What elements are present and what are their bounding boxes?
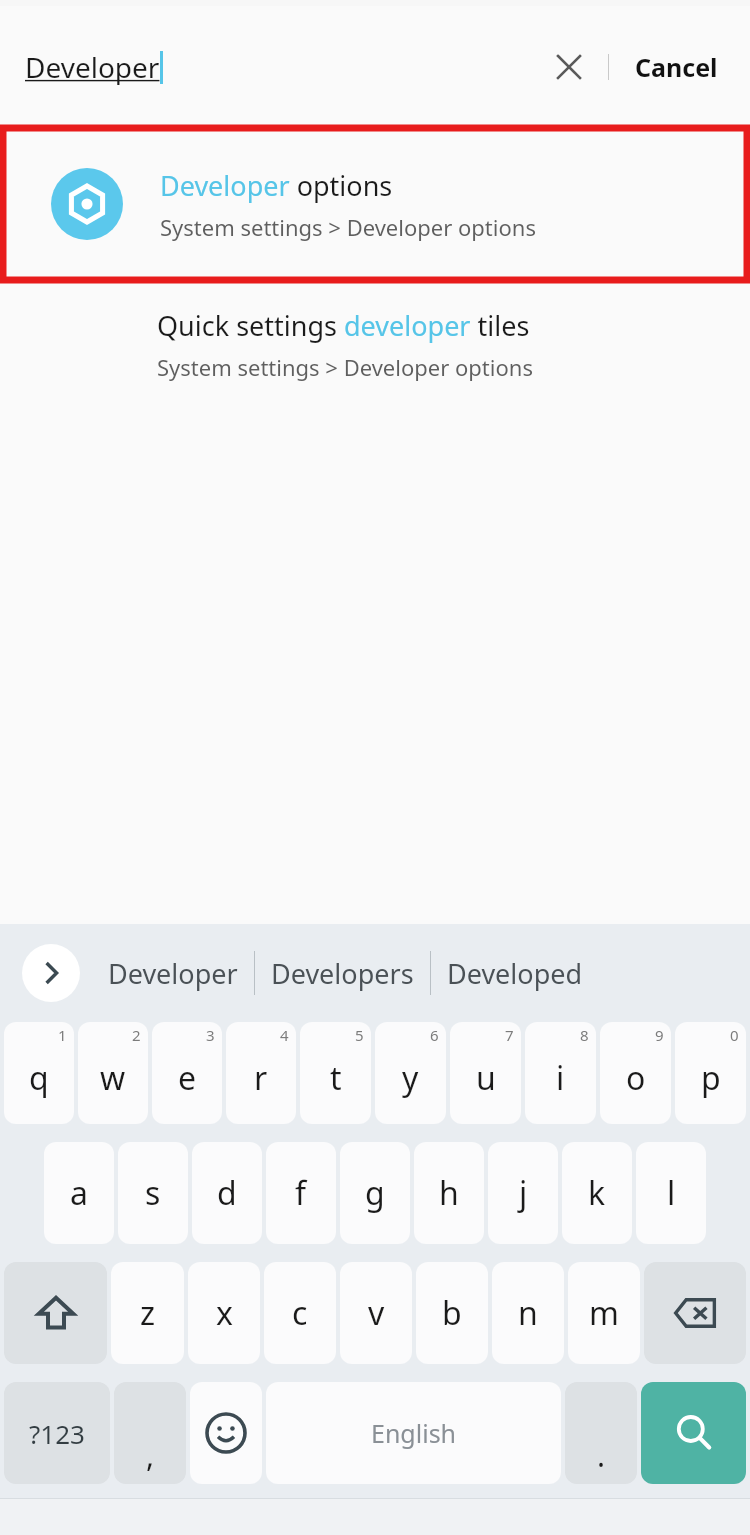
button[interactable]: 5 <box>300 1022 371 1124</box>
staticText: r <box>254 1056 268 1100</box>
staticText: s <box>145 1171 161 1215</box>
button[interactable]: k <box>562 1142 632 1244</box>
staticText: 8 <box>580 1025 589 1045</box>
button[interactable]: c <box>264 1262 336 1364</box>
staticText: ?123 <box>29 1416 85 1451</box>
button[interactable]: More suggestions <box>22 944 80 1002</box>
button[interactable]: Comma <box>114 1382 186 1484</box>
button[interactable]: ?123 <box>4 1382 110 1484</box>
button[interactable]: 3 <box>152 1022 222 1124</box>
staticText: y <box>402 1056 419 1100</box>
staticText: u <box>476 1056 496 1100</box>
button[interactable]: x <box>188 1262 260 1364</box>
staticText: h <box>439 1171 459 1215</box>
button[interactable]: 4 <box>226 1022 296 1124</box>
button[interactable]: 6 <box>375 1022 446 1124</box>
button[interactable]: Clear search <box>540 38 598 96</box>
staticText: m <box>589 1291 619 1335</box>
button[interactable]: Quick settings developer tiles <box>0 280 750 408</box>
button[interactable]: Developed <box>431 943 599 1004</box>
button[interactable]: g <box>340 1142 410 1244</box>
staticText: 7 <box>505 1025 514 1045</box>
button[interactable]: Backspace <box>644 1262 746 1364</box>
button[interactable]: d <box>192 1142 262 1244</box>
staticText: System settings > Developer options <box>160 212 536 242</box>
staticText: o <box>626 1056 646 1100</box>
staticText: 2 <box>132 1025 141 1045</box>
button[interactable]: v <box>340 1262 412 1364</box>
button[interactable]: Search <box>641 1382 746 1484</box>
staticText: Developer <box>108 955 238 992</box>
staticText: n <box>518 1291 538 1335</box>
staticText: b <box>442 1291 462 1335</box>
staticText: w <box>100 1056 126 1100</box>
staticText: 5 <box>355 1025 364 1045</box>
button[interactable]: m <box>568 1262 640 1364</box>
staticText: g <box>365 1171 385 1215</box>
button[interactable]: Cancel <box>623 40 730 94</box>
button[interactable]: English <box>266 1382 561 1484</box>
staticText: System settings > Developer options <box>157 352 533 382</box>
staticText: l <box>667 1171 676 1215</box>
staticText: z <box>140 1291 156 1335</box>
button[interactable]: l <box>636 1142 706 1244</box>
button[interactable]: n <box>492 1262 564 1364</box>
staticText: x <box>216 1291 233 1335</box>
staticText: j <box>519 1171 528 1215</box>
staticText: Quick settings developer tiles <box>157 307 530 344</box>
button[interactable]: 7 <box>450 1022 521 1124</box>
staticText: Developers <box>271 955 414 992</box>
button[interactable]: Developer <box>92 943 254 1004</box>
staticText: Developed <box>447 955 583 992</box>
staticText: 6 <box>430 1025 439 1045</box>
staticText: f <box>295 1171 307 1215</box>
button[interactable]: h <box>414 1142 484 1244</box>
button[interactable]: 0 <box>675 1022 746 1124</box>
staticText: 4 <box>280 1025 289 1045</box>
staticText: t <box>330 1056 342 1100</box>
button[interactable]: 9 <box>600 1022 671 1124</box>
button[interactable]: s <box>118 1142 188 1244</box>
staticText: a <box>70 1171 88 1215</box>
button[interactable]: f <box>266 1142 336 1244</box>
button[interactable]: j <box>488 1142 558 1244</box>
staticText: , <box>146 1435 155 1476</box>
button[interactable]: 8 <box>525 1022 596 1124</box>
button[interactable]: Developer options <box>3 128 747 280</box>
button[interactable]: b <box>416 1262 488 1364</box>
button[interactable]: 2 <box>78 1022 148 1124</box>
staticText: 3 <box>206 1025 215 1045</box>
staticText: v <box>368 1291 385 1335</box>
button[interactable]: z <box>111 1262 184 1364</box>
staticText: c <box>292 1291 308 1335</box>
button[interactable]: Shift <box>4 1262 107 1364</box>
staticText: d <box>217 1171 237 1215</box>
staticText: English <box>371 1416 457 1450</box>
staticText: i <box>556 1056 565 1100</box>
button[interactable]: Developers <box>255 943 430 1004</box>
staticText: Developer options <box>160 167 393 204</box>
staticText: 0 <box>730 1025 739 1045</box>
staticText: q <box>29 1056 49 1100</box>
staticText: k <box>588 1171 606 1215</box>
button[interactable]: Period <box>565 1382 637 1484</box>
button[interactable]: 1 <box>4 1022 74 1124</box>
staticText: . <box>597 1435 606 1476</box>
staticText: e <box>178 1056 197 1100</box>
staticText: Developer <box>25 48 160 86</box>
button[interactable]: Emoji <box>190 1382 262 1484</box>
staticText: Cancel <box>635 50 718 84</box>
staticText: 1 <box>58 1025 67 1045</box>
staticText: 9 <box>655 1025 664 1045</box>
button[interactable]: a <box>44 1142 114 1244</box>
staticText: p <box>701 1056 721 1100</box>
